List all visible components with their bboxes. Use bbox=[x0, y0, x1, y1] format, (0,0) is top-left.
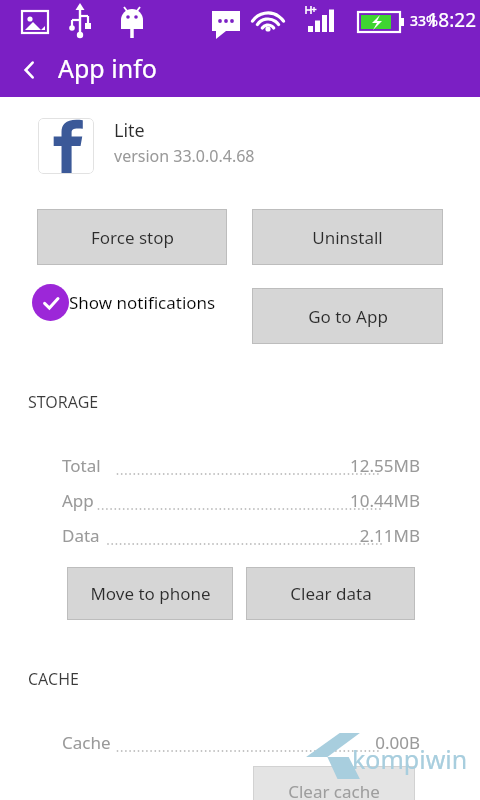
staticText: Show notifications bbox=[69, 291, 216, 314]
staticText: App info bbox=[58, 51, 157, 85]
button[interactable]: Force stop bbox=[37, 209, 227, 265]
button[interactable]: Show notifications bbox=[32, 282, 216, 322]
staticText: Cache bbox=[62, 731, 111, 754]
staticText: Clear data bbox=[290, 582, 372, 605]
staticText: 2.11MB bbox=[300, 524, 420, 547]
staticText: Clear cache bbox=[288, 780, 380, 800]
staticText: STORAGE bbox=[28, 391, 99, 413]
button[interactable]: Go to App bbox=[252, 288, 443, 344]
button[interactable]: Clear cache bbox=[253, 766, 415, 800]
staticText: 0.00B bbox=[300, 731, 420, 754]
button[interactable]: Uninstall bbox=[252, 209, 443, 265]
staticText: Go to App bbox=[308, 305, 388, 328]
staticText: 18:22 bbox=[410, 7, 476, 33]
button[interactable]: Clear data bbox=[246, 567, 415, 620]
button[interactable]: Move to phone bbox=[67, 567, 233, 620]
staticText: version 33.0.0.4.68 bbox=[114, 145, 255, 167]
staticText: Total bbox=[62, 454, 101, 477]
staticText: Move to phone bbox=[90, 582, 211, 605]
staticText: 10.44MB bbox=[300, 489, 420, 512]
staticText: 33% bbox=[410, 11, 438, 30]
button[interactable]: Back bbox=[8, 48, 52, 92]
staticText: App bbox=[62, 489, 94, 512]
staticText: Uninstall bbox=[312, 226, 383, 249]
staticText: CACHE bbox=[28, 668, 79, 690]
staticText: Data bbox=[62, 524, 100, 547]
staticText: Force stop bbox=[91, 226, 174, 249]
staticText: kompiwin bbox=[352, 742, 468, 776]
staticText: 12.55MB bbox=[300, 454, 420, 477]
staticText: Lite bbox=[114, 118, 145, 143]
